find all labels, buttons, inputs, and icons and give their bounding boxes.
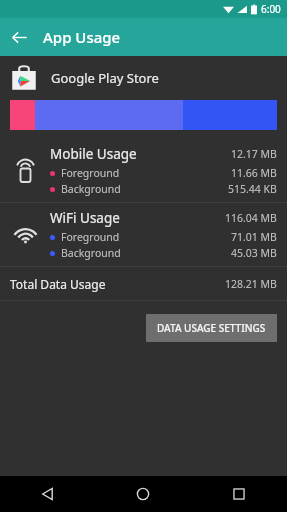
button[interactable]: Home — [95, 476, 191, 512]
button[interactable]: Back — [0, 476, 95, 512]
button[interactable]: Mobile data — [0, 139, 287, 202]
other: Mobile data — [13, 158, 38, 183]
staticText: 116.04 MB — [225, 211, 277, 225]
staticText: Background — [61, 182, 121, 196]
staticText: Google Play Store — [51, 69, 159, 87]
button[interactable]: WiFi — [0, 203, 287, 266]
staticText: Foreground — [61, 230, 120, 244]
button[interactable]: Back — [0, 18, 38, 56]
button[interactable]: DATA USAGE SETTINGS — [146, 314, 277, 342]
button[interactable]: Google Play Store — [0, 56, 287, 100]
button[interactable]: Recent apps — [191, 476, 287, 512]
staticText: 11.66 MB — [231, 166, 277, 180]
staticText: 12.17 MB — [231, 147, 277, 161]
staticText: App Usage — [43, 27, 121, 47]
staticText: Foreground — [61, 166, 120, 180]
button[interactable]: Total Data Usage — [10, 267, 277, 300]
staticText: 71.01 MB — [231, 230, 277, 244]
staticText: 515.44 KB — [228, 182, 277, 196]
staticText: 128.21 MB — [225, 277, 277, 291]
staticText: Total Data Usage — [10, 276, 106, 292]
staticText: DATA USAGE SETTINGS — [157, 321, 266, 335]
staticText: Mobile Usage — [50, 145, 137, 163]
staticText: 6:00 — [261, 2, 281, 16]
staticText: 45.03 MB — [231, 246, 277, 260]
staticText: Background — [61, 246, 121, 260]
staticText: WiFi Usage — [50, 209, 120, 227]
other: WiFi — [12, 221, 39, 248]
